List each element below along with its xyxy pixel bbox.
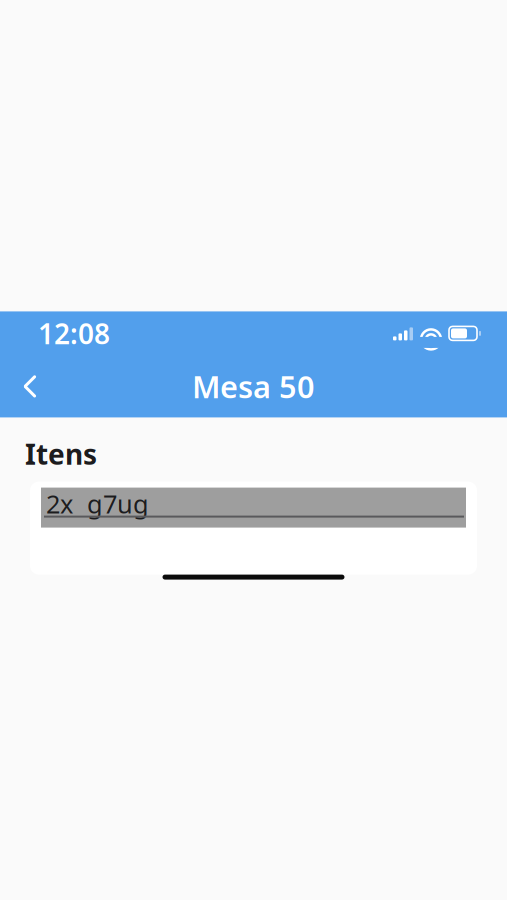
staticText: 12:08: [38, 315, 110, 352]
button[interactable]: Back: [6, 362, 54, 410]
staticText: 2x g7ug: [46, 487, 149, 520]
button[interactable]: 2x g7ug: [41, 488, 466, 528]
staticText: Itens: [25, 435, 97, 473]
staticText: Mesa 50: [192, 366, 315, 407]
